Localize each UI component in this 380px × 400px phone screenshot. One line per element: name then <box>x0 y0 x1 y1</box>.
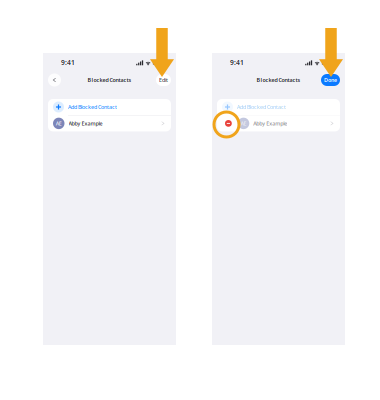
staticText: Done <box>324 76 337 84</box>
staticText: Blocked Contacts <box>87 76 131 84</box>
staticText: AE <box>241 120 247 127</box>
button[interactable]: AE <box>48 115 171 131</box>
button[interactable]: Edit <box>156 74 171 86</box>
button[interactable]: AE <box>217 115 340 131</box>
staticText: Add Blocked Contact <box>237 103 286 111</box>
button[interactable]: Done <box>321 74 340 86</box>
staticText: AE <box>56 120 62 127</box>
staticText: Abby Example <box>253 120 287 127</box>
staticText: 9:41 <box>230 58 244 67</box>
button[interactable]: Back <box>48 73 61 86</box>
button[interactable]: Add Blocked Contact <box>48 99 171 115</box>
staticText: Abby Example <box>68 120 102 127</box>
staticText: 9:41 <box>61 58 75 67</box>
staticText: Edit <box>159 76 168 84</box>
staticText: Add Blocked Contact <box>68 103 117 111</box>
staticText: Blocked Contacts <box>256 76 300 84</box>
button[interactable]: Add Blocked Contact <box>217 99 340 115</box>
